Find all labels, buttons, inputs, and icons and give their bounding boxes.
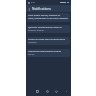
staticText: Quisque condimentum enim at mauris [28, 26, 69, 29]
button[interactable]: Back [27, 7, 31, 11]
button[interactable]: More [63, 88, 69, 94]
button[interactable]: Home [44, 88, 50, 94]
staticText: pharetra sodales [28, 29, 44, 32]
staticText: Maecenas pellentesque lacinia [28, 50, 61, 53]
button[interactable]: Donec sit amet nibh sit amet lacus [27, 37, 70, 45]
staticText: Mar 09 [28, 53, 35, 56]
button[interactable]: Back [53, 88, 59, 94]
button[interactable]: Nam lectus metus, placerat at pharetra [27, 13, 70, 22]
staticText: 9:41 [31, 1, 36, 4]
staticText: Yesterday [28, 41, 37, 44]
button[interactable]: Recents [34, 88, 40, 94]
button[interactable]: Quisque condimentum enim at mauris [27, 25, 70, 33]
staticText: Notifications [32, 7, 51, 11]
staticText: vitae, sollicitudin ut leo nunc dapibus [28, 17, 68, 20]
staticText: Nam lectus metus, placerat at pharetra [28, 14, 69, 17]
staticText: Donec sit amet nibh sit amet lacus [28, 38, 65, 41]
button[interactable]: Maecenas pellentesque lacinia [27, 49, 70, 57]
